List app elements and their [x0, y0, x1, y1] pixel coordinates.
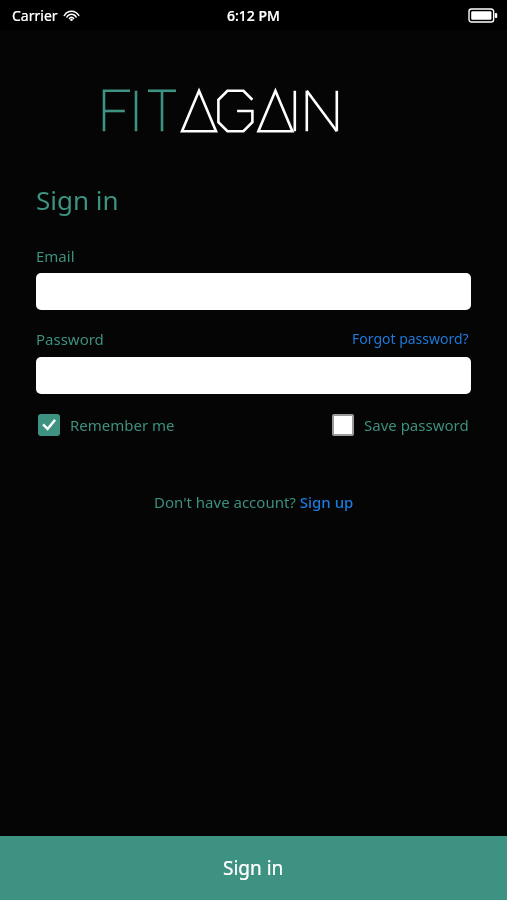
button[interactable]: Forgot password? — [350, 327, 471, 350]
staticText: Carrier — [12, 6, 58, 25]
staticText: Forgot password? — [352, 329, 469, 348]
button[interactable]: Sign in — [0, 836, 507, 900]
staticText: Remember me — [70, 415, 175, 435]
button[interactable]: Don't have account? Sign up — [150, 488, 358, 516]
staticText: 6:12 PM — [227, 6, 280, 25]
staticText: Don't have account? Sign up — [154, 492, 354, 512]
button[interactable]: Text field — [36, 273, 471, 310]
staticText: Sign in — [36, 182, 119, 217]
button[interactable]: Save password — [330, 412, 471, 438]
button[interactable]: Remember me — [36, 412, 177, 438]
staticText: Save password — [364, 415, 469, 435]
button[interactable]: Text field — [36, 357, 471, 394]
staticText: Sign in — [223, 855, 284, 881]
staticText: Password — [36, 329, 104, 349]
staticText: Email — [36, 246, 75, 266]
